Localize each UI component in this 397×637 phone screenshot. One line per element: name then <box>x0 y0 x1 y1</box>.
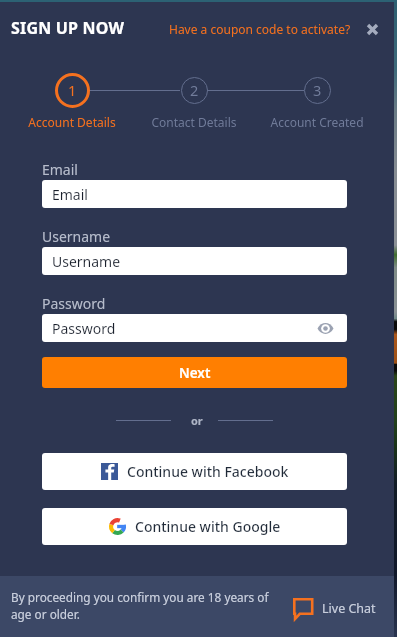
staticText: Account Details <box>28 114 116 130</box>
button[interactable]: Have a coupon code to activate? <box>165 17 355 41</box>
staticText: Account Created <box>270 114 364 130</box>
staticText: 2 <box>190 80 199 100</box>
staticText: SIGN UP NOW <box>11 17 125 39</box>
staticText: Password <box>52 319 116 338</box>
button[interactable]: Next <box>42 357 347 388</box>
staticText: Username <box>52 252 121 271</box>
button[interactable]: Close <box>360 17 384 41</box>
button[interactable]: Email <box>42 180 347 208</box>
button[interactable]: 2 <box>124 73 264 129</box>
staticText: Next <box>179 364 211 382</box>
button[interactable]: Username <box>42 247 347 275</box>
staticText: 3 <box>313 80 322 100</box>
button[interactable]: SIGN UP NOW <box>11 17 125 39</box>
staticText: Live Chat <box>322 600 376 617</box>
staticText: Email <box>52 185 88 204</box>
staticText: Email <box>42 160 78 179</box>
staticText: Username <box>42 227 111 246</box>
staticText: Continue with Google <box>135 517 281 536</box>
staticText: Continue with Facebook <box>127 462 289 481</box>
button[interactable]: Live Chat <box>291 596 378 621</box>
staticText: Contact Details <box>151 114 237 130</box>
staticText: Password <box>42 294 106 313</box>
staticText: 1 <box>68 80 77 100</box>
button[interactable]: Continue with Facebook <box>42 453 347 490</box>
button[interactable]: 3 <box>247 73 387 129</box>
staticText: Have a coupon code to activate? <box>169 21 351 37</box>
staticText: or <box>191 413 203 428</box>
button[interactable]: Continue with Google <box>42 508 347 545</box>
button[interactable]: Password <box>42 314 347 342</box>
staticText: By proceeding you confirm you are 18 yea… <box>11 589 279 623</box>
button[interactable]: 1 <box>2 73 142 129</box>
